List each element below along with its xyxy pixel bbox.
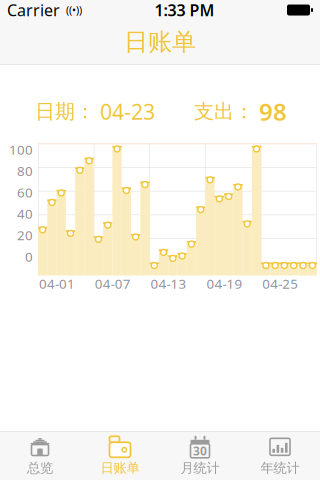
staticText: 年统计 xyxy=(260,460,299,476)
staticText: 04-23 xyxy=(100,97,155,126)
staticText: 20 xyxy=(17,226,33,244)
button[interactable]: 日账单 xyxy=(80,432,160,480)
button[interactable]: 总览 xyxy=(0,432,80,480)
staticText: 04-19 xyxy=(206,275,242,292)
staticText: 60 xyxy=(17,183,33,201)
staticText: 04-01 xyxy=(39,275,75,292)
staticText: 0 xyxy=(25,248,33,265)
staticText: 日账单 xyxy=(124,27,196,57)
staticText: 80 xyxy=(17,162,33,180)
staticText: 40 xyxy=(17,205,33,222)
button[interactable]: 年统计 xyxy=(240,432,320,480)
staticText: 04-25 xyxy=(262,275,298,292)
staticText: 100 xyxy=(9,141,33,158)
staticText: 1:33 PM xyxy=(154,0,214,21)
button[interactable]: 30 xyxy=(160,432,240,480)
staticText: ((•)) xyxy=(60,3,82,17)
staticText: 04-07 xyxy=(95,275,131,292)
staticText: 支出： xyxy=(194,99,254,124)
staticText: 总览 xyxy=(27,460,53,476)
staticText: 日账单 xyxy=(100,460,139,476)
staticText: Carrier xyxy=(7,0,60,21)
staticText: 04-13 xyxy=(151,275,187,292)
staticText: 月统计 xyxy=(180,460,219,476)
staticText: 30 xyxy=(193,443,207,459)
staticText: 日期： xyxy=(35,99,95,124)
staticText: 98 xyxy=(259,96,287,127)
